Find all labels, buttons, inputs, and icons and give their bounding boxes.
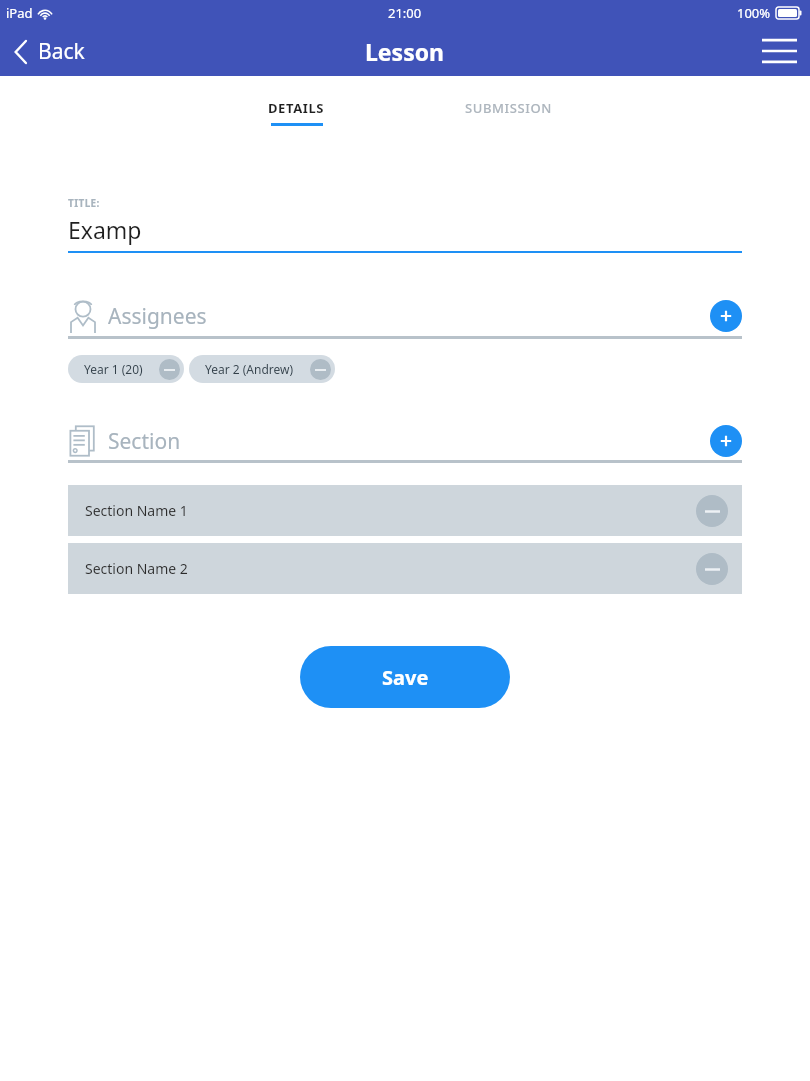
staticText: DETAILS — [268, 99, 325, 117]
staticText: iPad — [6, 4, 33, 22]
button[interactable]: Year 1 (20) — [68, 355, 184, 383]
button[interactable]: Section Name 1 — [68, 485, 742, 536]
button[interactable]: Save — [300, 646, 510, 708]
staticText: Section Name 2 — [85, 559, 188, 578]
button[interactable]: DETAILS — [254, 91, 339, 134]
staticText: Year 2 (Andrew) — [205, 361, 294, 377]
staticText: Lesson — [365, 36, 445, 67]
staticText: Save — [382, 664, 429, 691]
button[interactable]: Add section — [710, 425, 742, 457]
button[interactable]: Year 2 (Andrew) — [189, 355, 335, 383]
staticText: 21:00 — [388, 4, 422, 22]
staticText: SUBMISSION — [465, 99, 552, 117]
staticText: Back — [38, 37, 85, 66]
staticText: 100% — [737, 4, 771, 22]
staticText: Assignees — [108, 302, 207, 331]
button[interactable]: Back — [0, 31, 99, 72]
staticText: Year 1 (20) — [84, 361, 143, 377]
button[interactable]: SUBMISSION — [451, 91, 566, 134]
button[interactable]: Section Name 2 — [68, 543, 742, 594]
staticText: Examp — [68, 214, 142, 245]
button[interactable]: Menu — [748, 28, 810, 74]
button[interactable]: Add assignee — [710, 300, 742, 332]
staticText: TITLE: — [68, 196, 100, 210]
staticText: Section — [108, 427, 181, 456]
staticText: Section Name 1 — [85, 501, 188, 520]
button[interactable]: Examp — [68, 214, 742, 245]
